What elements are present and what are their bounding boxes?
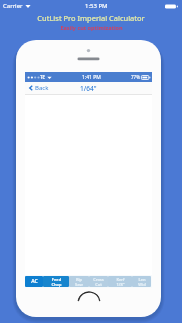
staticText: 77% [131,74,140,80]
staticText: AC [31,278,38,285]
staticText: 1/64" [80,84,97,93]
staticText: CutList Pro Imperial Calculator [37,13,145,23]
button[interactable]: Back [25,82,53,94]
staticText: Rip Saw [75,277,83,287]
staticText: Kerf 1/8" [116,277,125,287]
staticText: Back [35,84,49,92]
button[interactable]: Len Wid [132,276,151,287]
staticText: Easily cut optimization [60,24,123,31]
button[interactable]: AC [25,276,43,287]
staticText: Carrier [3,2,23,10]
button[interactable]: Rip Saw [69,276,89,287]
staticText: 1:41 PM [82,74,101,81]
staticText: Len Wid [138,277,146,287]
button[interactable]: Feed Chop [43,276,69,287]
button[interactable]: Cross Cut [89,276,108,287]
staticText: Feed Chop [51,277,62,287]
staticText: 1:53 PM [85,2,108,10]
staticText: Cross Cut [93,277,104,287]
staticText: TE [40,74,46,80]
button[interactable]: Home [77,291,101,315]
button[interactable]: Kerf 1/8" [108,276,132,287]
